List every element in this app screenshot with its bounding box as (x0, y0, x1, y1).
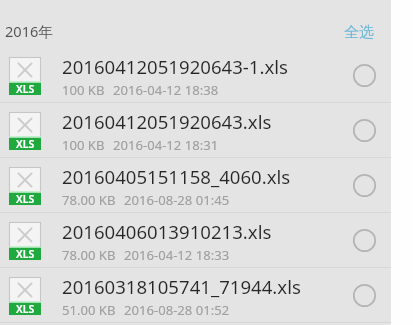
staticText: 78.00 KB (62, 246, 116, 264)
staticText: 2016-04-12 18:33 (124, 246, 230, 264)
staticText: XLS (16, 302, 35, 314)
button[interactable]: XLS (0, 48, 391, 103)
staticText: XLS (16, 192, 35, 204)
button[interactable]: XLS (0, 213, 391, 268)
button[interactable]: XLS (0, 103, 391, 158)
button[interactable]: Select 20160318105741_71944.xls (344, 275, 384, 315)
button[interactable]: Select 20160405151158_4060.xls (344, 165, 384, 205)
staticText: XLS (16, 82, 35, 94)
staticText: 全选 (344, 23, 374, 42)
staticText: 20160412051920643-1.xls (62, 54, 288, 79)
staticText: 20160412051920643.xls (62, 109, 272, 134)
staticText: 20160406013910213.xls (62, 219, 272, 244)
staticText: 2016-08-28 01:45 (124, 191, 230, 209)
button[interactable]: XLS (0, 268, 391, 323)
staticText: XLS (16, 247, 35, 259)
staticText: 2016-08-28 01:52 (124, 301, 230, 319)
staticText: XLS (16, 137, 35, 149)
button[interactable]: Select 20160412051920643.xls (344, 110, 384, 150)
staticText: 100 KB (62, 81, 105, 99)
staticText: 2016-04-12 18:31 (113, 136, 219, 154)
staticText: 78.00 KB (62, 191, 116, 209)
button[interactable]: Select 20160412051920643-1.xls (344, 55, 384, 95)
staticText: 100 KB (62, 136, 105, 154)
staticText: 2016年 (5, 21, 53, 41)
button[interactable]: Select 20160406013910213.xls (344, 220, 384, 260)
button[interactable]: 全选 (332, 11, 388, 47)
staticText: 20160318105741_71944.xls (62, 274, 301, 299)
staticText: 20160405151158_4060.xls (62, 164, 291, 189)
staticText: 2016-04-12 18:38 (113, 81, 219, 99)
staticText: 51.00 KB (62, 301, 116, 319)
button[interactable]: XLS (0, 158, 391, 213)
